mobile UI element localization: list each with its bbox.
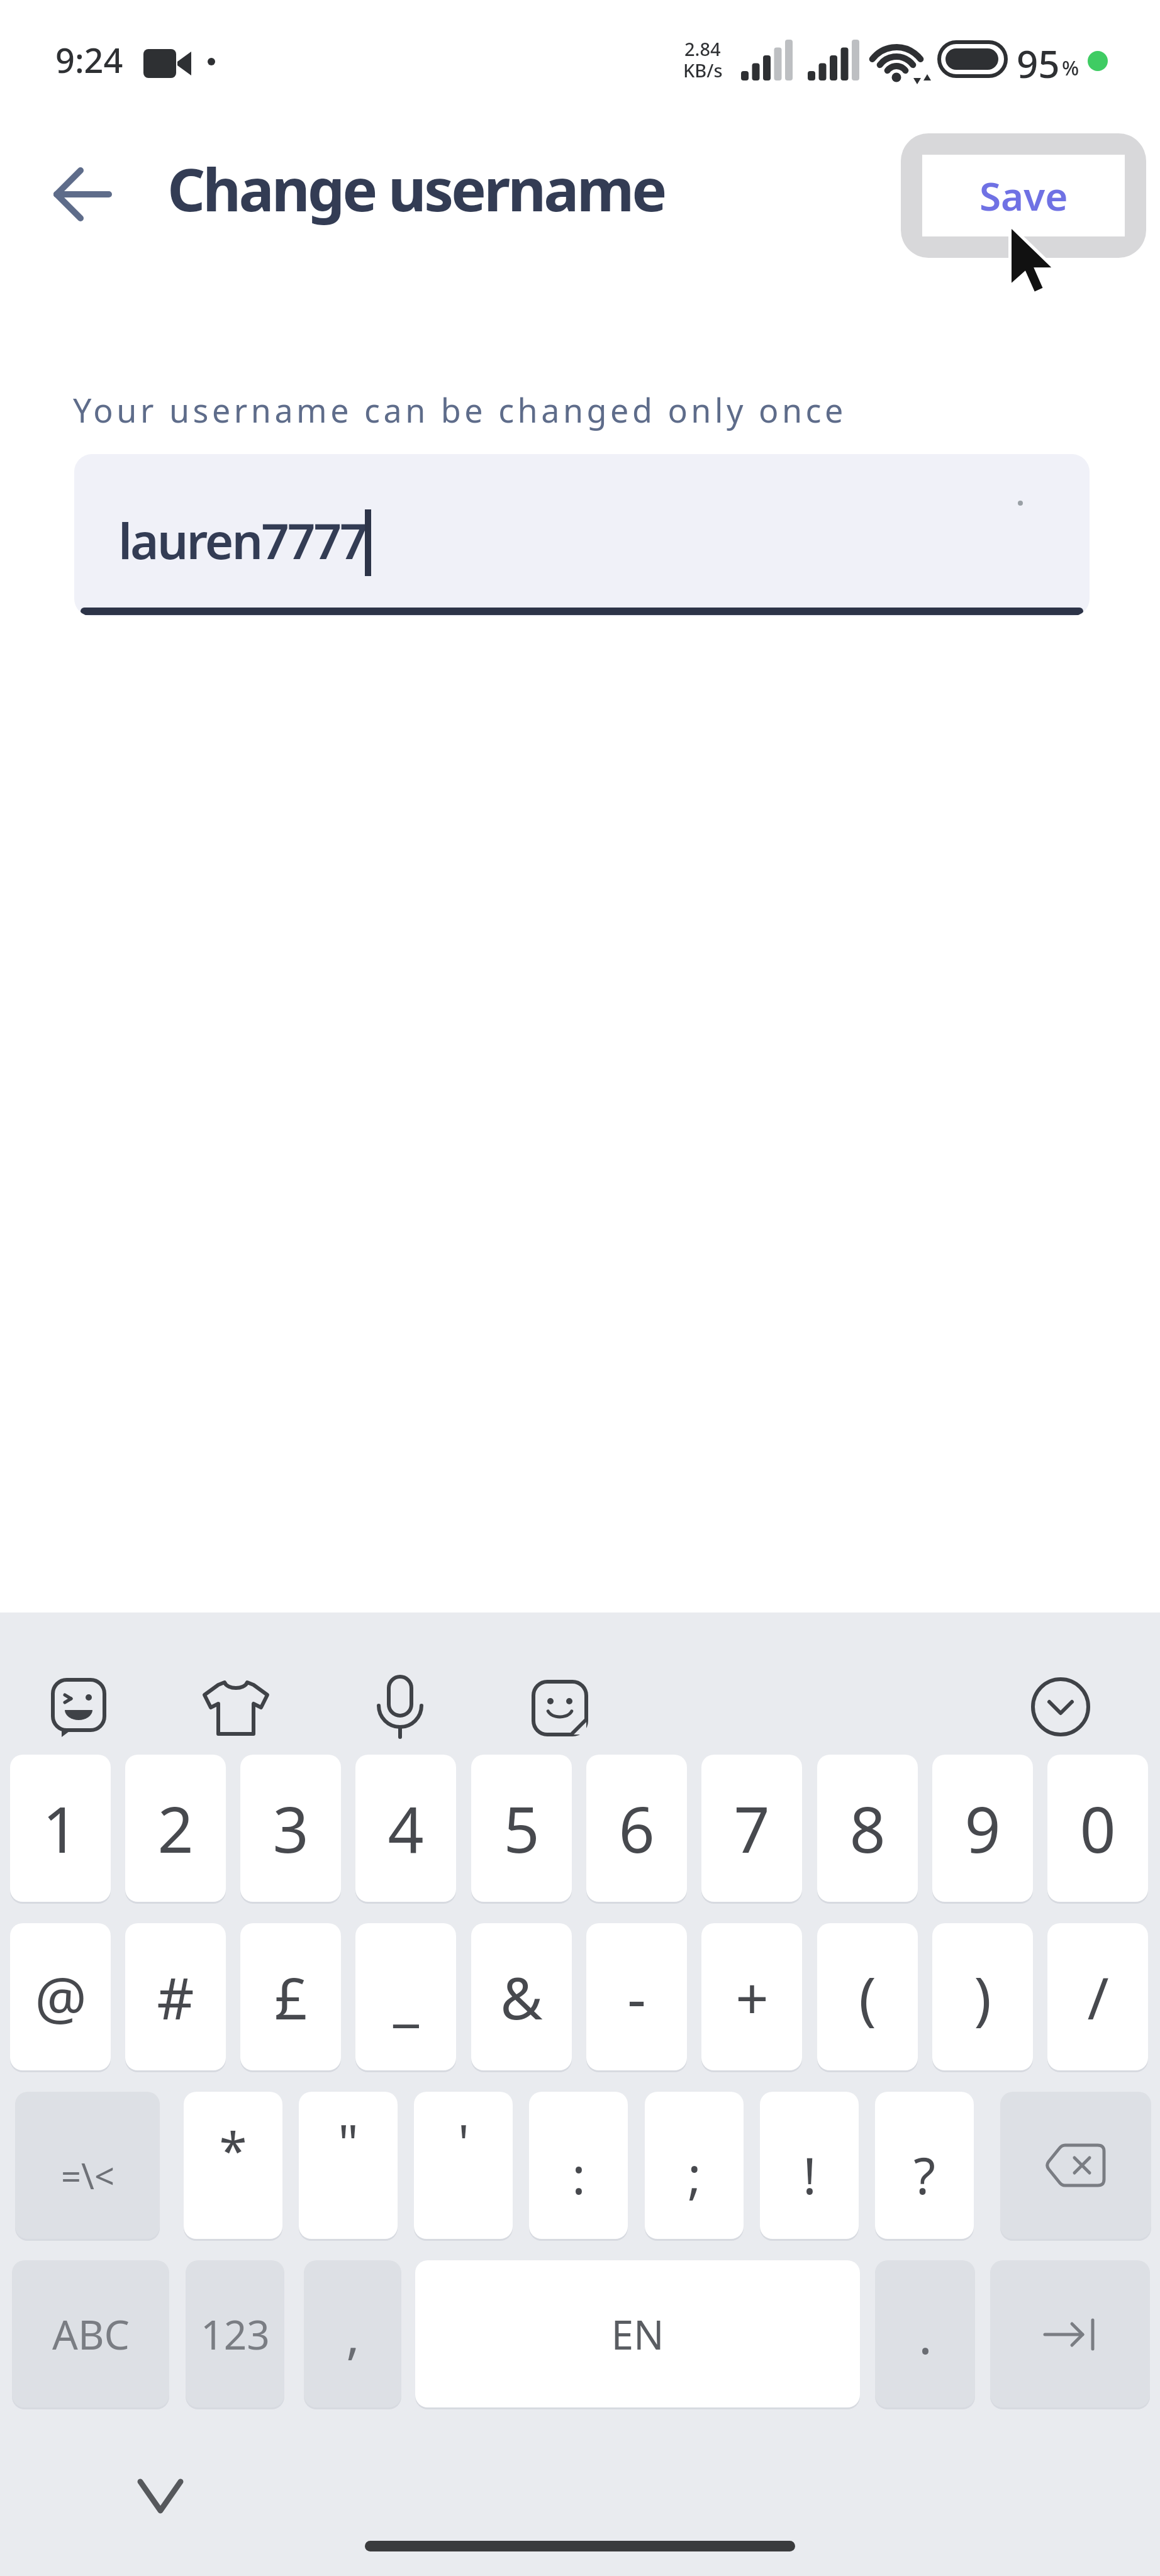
- button[interactable]: +: [701, 1923, 802, 2070]
- button[interactable]: 6: [586, 1755, 687, 1902]
- button[interactable]: ;: [645, 2092, 744, 2239]
- button[interactable]: 8: [817, 1755, 918, 1902]
- staticText: +: [735, 1958, 769, 2036]
- staticText: (: [859, 1958, 876, 2036]
- staticText: Save: [979, 169, 1068, 222]
- button[interactable]: [38, 1670, 120, 1746]
- staticText: 95: [1017, 38, 1060, 89]
- button[interactable]: [1017, 1668, 1105, 1746]
- button[interactable]: 2: [125, 1755, 226, 1902]
- staticText: KB/s: [683, 58, 723, 82]
- staticText: 6: [618, 1785, 655, 1871]
- staticText: !: [803, 2140, 817, 2209]
- button[interactable]: [1000, 2092, 1151, 2239]
- staticText: 3: [272, 1785, 309, 1871]
- button[interactable]: .: [875, 2260, 975, 2407]
- staticText: £: [274, 1958, 308, 2036]
- button[interactable]: 123: [186, 2260, 284, 2407]
- staticText: ): [974, 1958, 991, 2036]
- button[interactable]: 3: [240, 1755, 341, 1902]
- staticText: 2.84: [684, 36, 721, 61]
- staticText: 0: [1079, 1785, 1116, 1871]
- button[interactable]: 0: [1047, 1755, 1148, 1902]
- staticText: 123: [201, 2307, 270, 2362]
- button[interactable]: [40, 153, 125, 235]
- button[interactable]: #: [125, 1923, 226, 2070]
- button[interactable]: :: [529, 2092, 628, 2239]
- staticText: 4: [388, 1785, 424, 1871]
- staticText: -: [627, 1958, 646, 2036]
- staticText: 5: [503, 1785, 540, 1871]
- button[interactable]: [189, 1670, 283, 1746]
- button[interactable]: ,: [304, 2260, 401, 2407]
- staticText: ,: [346, 2300, 360, 2368]
- button[interactable]: lauren7777: [74, 454, 1090, 616]
- button[interactable]: [113, 2455, 208, 2537]
- button[interactable]: Save: [901, 133, 1146, 258]
- staticText: ABC: [52, 2307, 130, 2362]
- staticText: 7: [733, 1785, 770, 1871]
- staticText: 9:24: [55, 36, 123, 83]
- button[interactable]: -: [586, 1923, 687, 2070]
- staticText: ': [458, 2107, 469, 2176]
- staticText: =\<: [61, 2151, 114, 2199]
- button[interactable]: ": [299, 2092, 398, 2239]
- staticText: ": [338, 2107, 359, 2176]
- button[interactable]: &: [471, 1923, 572, 2070]
- button[interactable]: !: [760, 2092, 859, 2239]
- button[interactable]: 9: [932, 1755, 1033, 1902]
- button[interactable]: *: [184, 2092, 282, 2239]
- button[interactable]: ': [414, 2092, 513, 2239]
- button[interactable]: ABC: [12, 2260, 169, 2407]
- button[interactable]: ): [932, 1923, 1033, 2070]
- staticText: _: [393, 1958, 419, 2036]
- staticText: .: [918, 2300, 932, 2368]
- staticText: ?: [913, 2140, 935, 2209]
- staticText: 2: [157, 1785, 194, 1871]
- staticText: 9: [964, 1785, 1001, 1871]
- staticText: 8: [849, 1785, 886, 1871]
- staticText: %: [1062, 54, 1079, 82]
- staticText: Change username: [167, 148, 665, 229]
- staticText: @: [35, 1958, 87, 2036]
- staticText: lauren7777: [118, 507, 366, 574]
- button[interactable]: [516, 1670, 604, 1746]
- staticText: ;: [688, 2140, 701, 2209]
- staticText: #: [157, 1958, 194, 2036]
- staticText: *: [219, 2115, 247, 2184]
- button[interactable]: [356, 1668, 444, 1746]
- button[interactable]: £: [240, 1923, 341, 2070]
- button[interactable]: 1: [10, 1755, 111, 1902]
- button[interactable]: (: [817, 1923, 918, 2070]
- staticText: &: [500, 1958, 543, 2036]
- staticText: Your username can be changed only once: [73, 387, 847, 432]
- button[interactable]: =\<: [15, 2092, 160, 2239]
- staticText: EN: [611, 2307, 664, 2362]
- staticText: /: [1087, 1958, 1109, 2036]
- button[interactable]: 5: [471, 1755, 572, 1902]
- button[interactable]: [990, 2260, 1150, 2407]
- button[interactable]: 4: [355, 1755, 456, 1902]
- staticText: :: [572, 2140, 586, 2209]
- button[interactable]: 7: [701, 1755, 802, 1902]
- button[interactable]: ?: [875, 2092, 974, 2239]
- button[interactable]: EN: [415, 2260, 860, 2407]
- button[interactable]: /: [1047, 1923, 1148, 2070]
- button[interactable]: @: [10, 1923, 111, 2070]
- button[interactable]: _: [355, 1923, 456, 2070]
- staticText: 1: [42, 1785, 79, 1871]
